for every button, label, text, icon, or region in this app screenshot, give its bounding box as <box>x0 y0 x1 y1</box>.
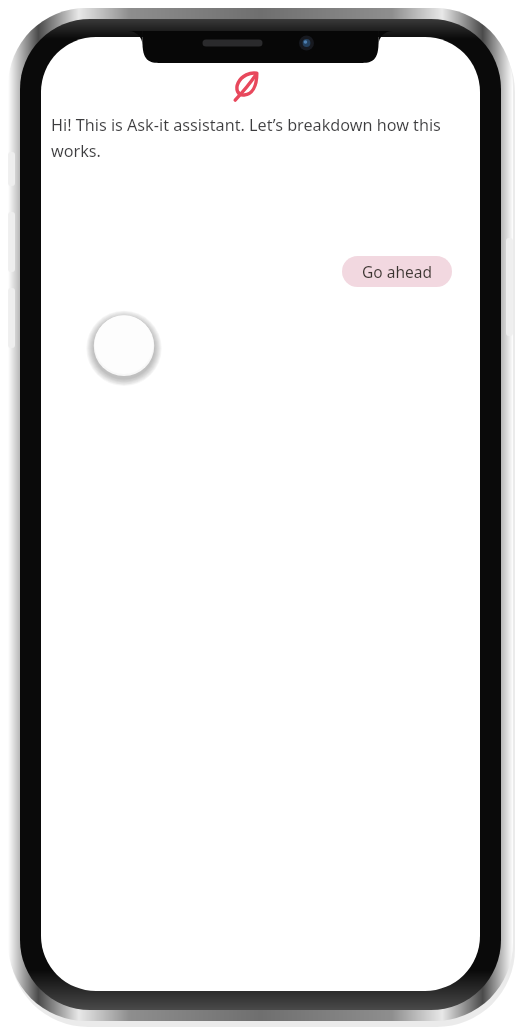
other: Assistant is typing <box>88 312 160 384</box>
staticText: Hi! This is Ask-it assistant. Let’s brea… <box>51 114 463 162</box>
other: Ask-it logo <box>231 70 261 102</box>
staticText: Go ahead <box>362 261 432 282</box>
button[interactable]: Go ahead <box>342 256 452 287</box>
